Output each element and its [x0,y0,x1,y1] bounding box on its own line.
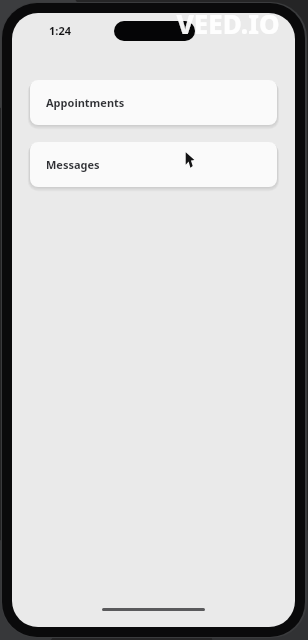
staticText: VEED.IO [176,6,280,34]
button[interactable]: Appointments [30,80,277,125]
button[interactable]: Messages [30,142,277,187]
staticText: Messages [46,157,100,172]
other: Dynamic Island [114,21,195,41]
staticText: Appointments [46,95,125,110]
staticText: 1:24 [49,23,71,38]
